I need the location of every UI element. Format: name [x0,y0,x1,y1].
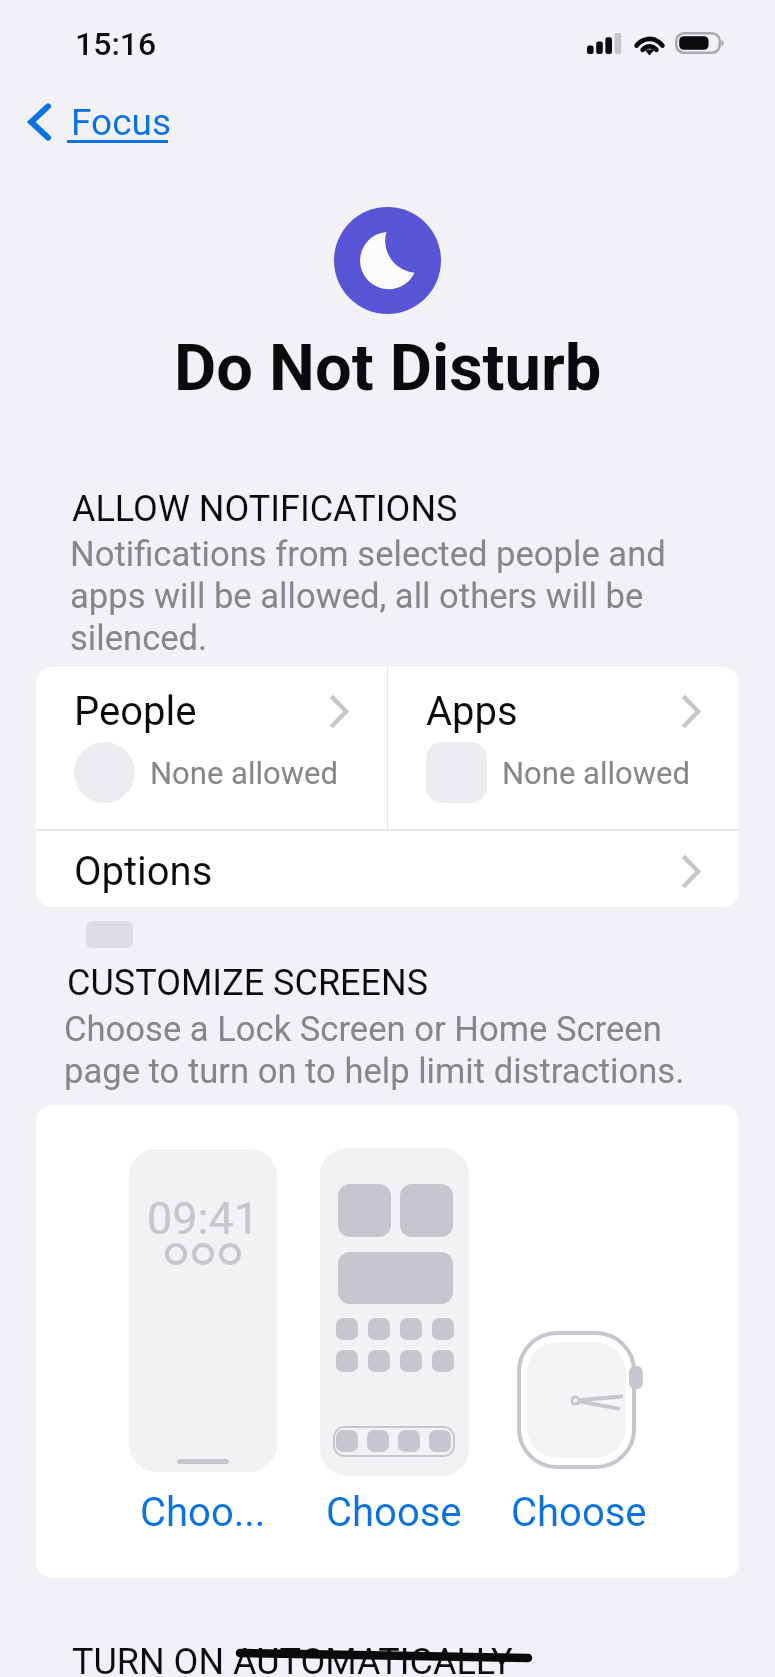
button[interactable]: Options [36,831,739,907]
button[interactable]: Apps [388,667,739,829]
other: Back [24,95,54,149]
button[interactable]: Choose [505,1489,653,1541]
staticText: Choo... [140,1489,266,1536]
button[interactable]: Home Screen preview [320,1148,469,1476]
staticText: People [74,688,197,735]
staticText: Apps [426,688,518,735]
staticText: TURN ON AUTOMATICALLY [72,1641,513,1677]
staticText: Options [74,848,213,895]
staticText: None allowed [150,755,338,791]
staticText: Choose a Lock Screen or Home Screen page… [64,1009,714,1092]
button[interactable]: Lock Screen preview [129,1149,277,1472]
staticText: 09:41 [147,1192,260,1245]
staticText: Choose [511,1489,647,1536]
staticText: Do Not Disturb [174,330,602,406]
staticText: ALLOW NOTIFICATIONS [72,488,458,530]
button[interactable]: Choose [320,1489,468,1541]
staticText: Notifications from selected people and a… [70,534,692,659]
button[interactable]: People [36,667,387,829]
button[interactable]: Back [18,95,182,149]
staticText: Focus [71,101,172,144]
staticText: None allowed [502,755,690,791]
button[interactable]: Choo... [129,1489,277,1541]
button[interactable]: Apple Watch face preview [517,1331,652,1471]
staticText: CUSTOMIZE SCREENS [67,962,429,1004]
staticText: 15:16 [75,25,157,63]
staticText: Choose [326,1489,462,1536]
